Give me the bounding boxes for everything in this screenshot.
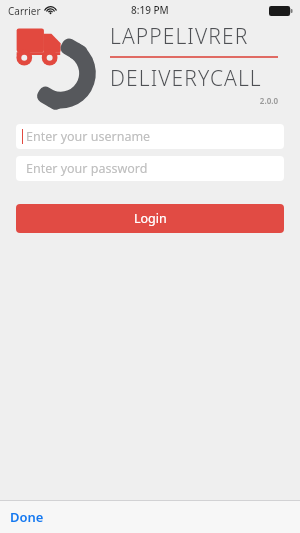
- staticText: Login: [134, 210, 167, 227]
- button[interactable]: Done: [0, 502, 54, 532]
- staticText: DELIVERYCALL: [110, 64, 262, 93]
- staticText: Enter your username: [26, 128, 151, 145]
- staticText: Carrier: [8, 4, 41, 18]
- button[interactable]: Enter your username: [16, 124, 284, 149]
- button[interactable]: Enter your password: [16, 156, 284, 181]
- staticText: Done: [10, 508, 44, 526]
- staticText: LAPPELIVRER: [110, 22, 249, 51]
- staticText: 8:19 PM: [131, 3, 169, 17]
- other: DeliveryCall logo: [14, 24, 102, 112]
- staticText: 2.0.0: [110, 95, 278, 106]
- button[interactable]: Login: [16, 204, 284, 233]
- staticText: Enter your password: [26, 160, 148, 177]
